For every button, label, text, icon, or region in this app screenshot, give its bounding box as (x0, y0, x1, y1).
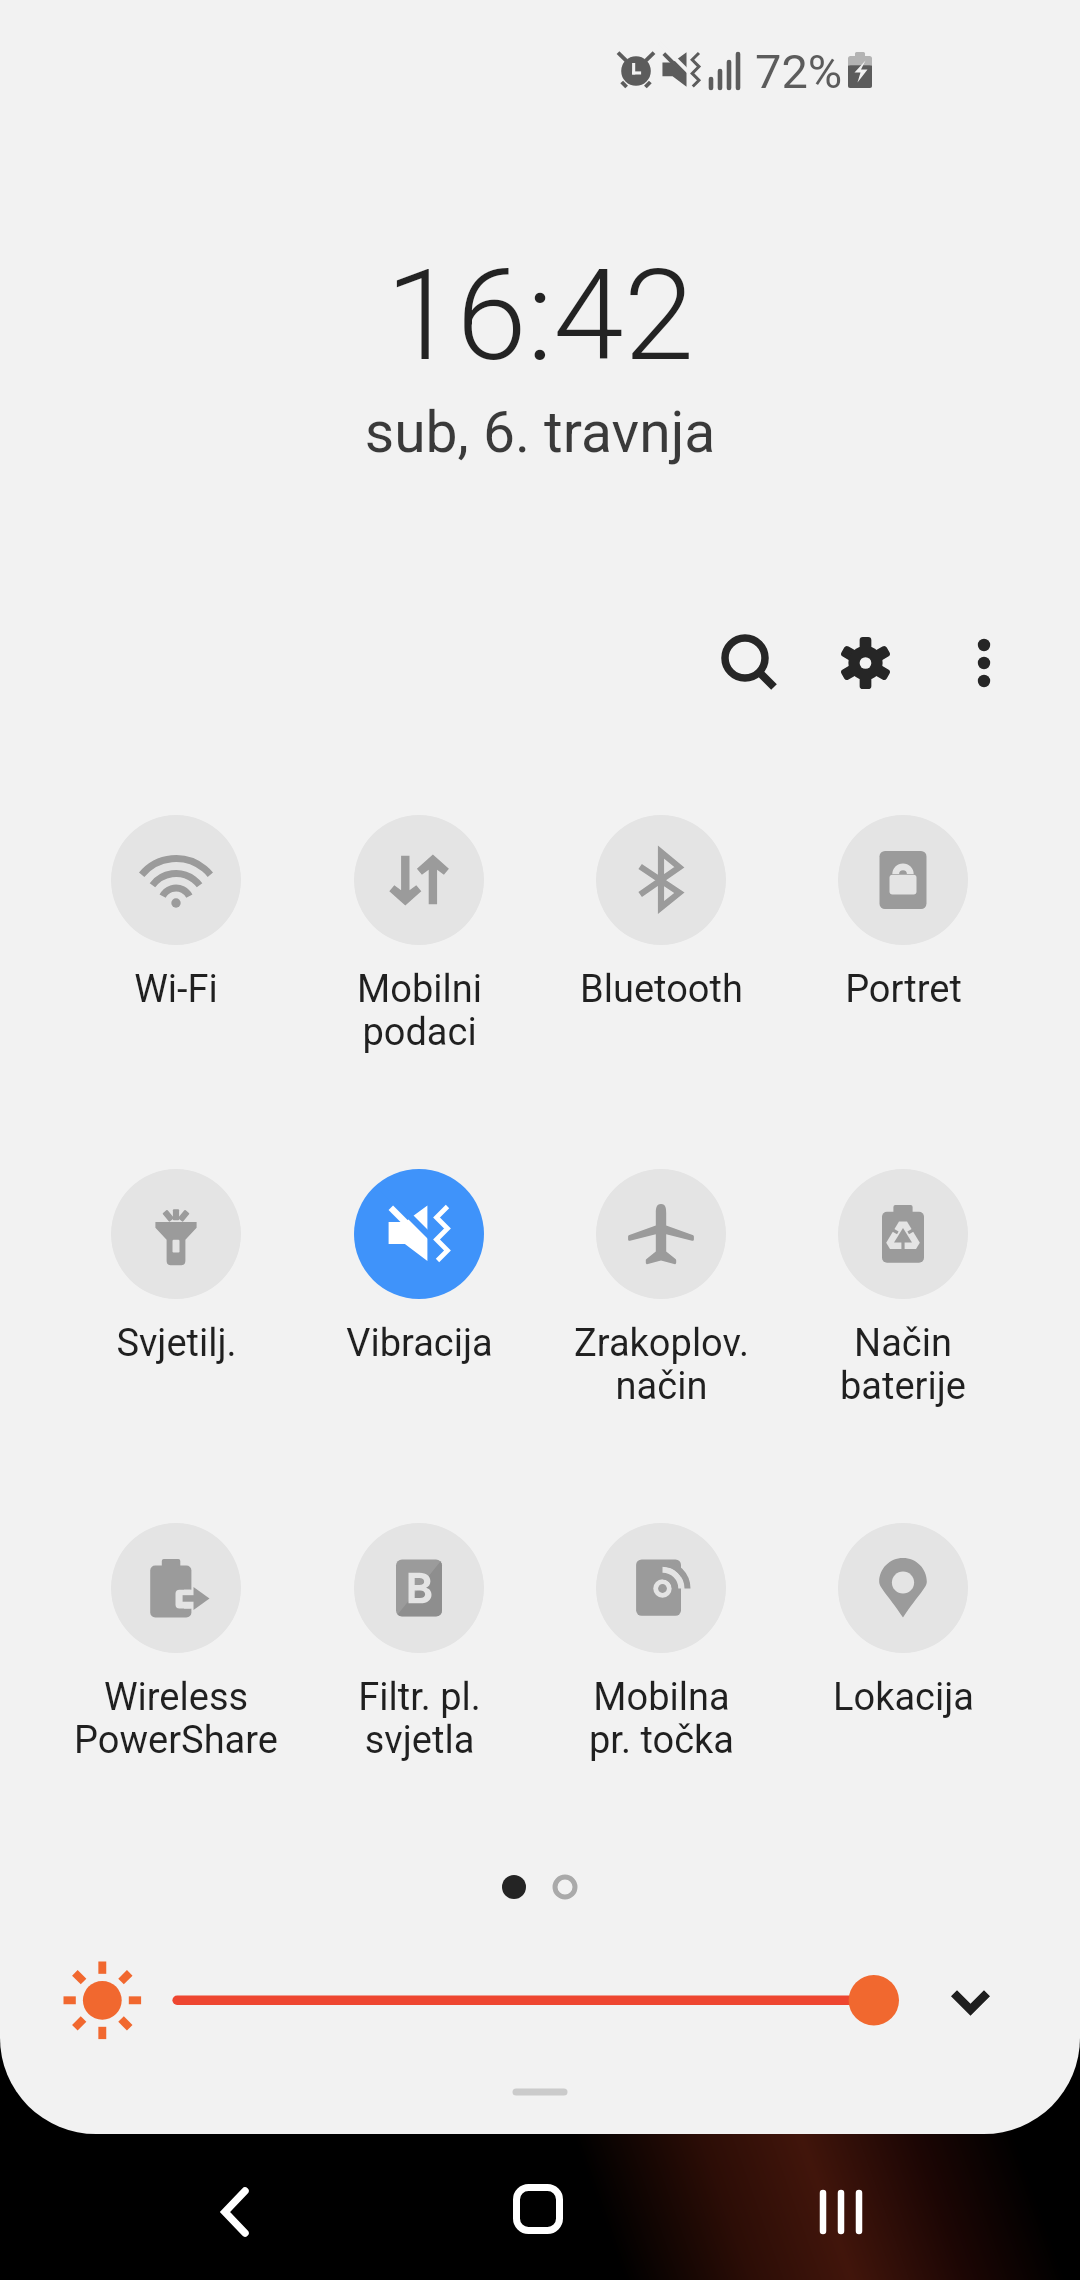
button[interactable]: Način baterije (783, 1157, 1023, 1408)
button[interactable]: Search (694, 608, 804, 718)
staticText: Wi-Fi (134, 967, 218, 1012)
button[interactable]: Settings (812, 608, 922, 718)
staticText: 16:42 (0, 241, 1080, 390)
button[interactable]: Recent apps (771, 2142, 911, 2280)
button[interactable]: More options (930, 608, 1040, 718)
staticText: Mobilna pr. točka (589, 1675, 734, 1762)
staticText: Wireless PowerShare (74, 1675, 278, 1762)
staticText: sub, 6. travnja (0, 399, 1080, 466)
button[interactable]: Mobilna pr. točka (541, 1511, 781, 1762)
button[interactable]: Brightness slider (165, 1950, 910, 2050)
button[interactable]: Quick settings pages (470, 1843, 610, 1931)
button[interactable]: Zrakoplov. način (541, 1157, 781, 1408)
button[interactable]: Brightness (40, 1938, 165, 2063)
button[interactable]: Vibracija (299, 1157, 539, 1366)
staticText: Vibracija (346, 1321, 493, 1366)
button[interactable]: Bluetooth (541, 803, 781, 1012)
staticText: Lokacija (833, 1675, 974, 1720)
button[interactable]: Svjetilj. (56, 1157, 296, 1366)
staticText: Portret (845, 967, 962, 1012)
staticText: Zrakoplov. način (574, 1321, 749, 1408)
button[interactable]: Filtr. pl. svjetla (299, 1511, 539, 1762)
staticText: Mobilni podaci (357, 967, 482, 1054)
button[interactable]: Wireless PowerShare (56, 1511, 296, 1762)
button[interactable]: Portret (783, 803, 1023, 1012)
staticText: Svjetilj. (116, 1321, 237, 1366)
button[interactable]: Home (468, 2139, 608, 2279)
staticText: 72% (755, 44, 843, 99)
button[interactable]: Expand brightness settings (918, 1948, 1023, 2053)
button[interactable]: Wi-Fi (56, 803, 296, 1012)
button[interactable]: Lokacija (783, 1511, 1023, 1720)
staticText: Način baterije (840, 1321, 966, 1408)
staticText: Bluetooth (580, 967, 743, 1012)
button[interactable]: Back (165, 2142, 305, 2280)
button[interactable]: Mobilni podaci (299, 803, 539, 1054)
staticText: Filtr. pl. svjetla (358, 1675, 481, 1762)
